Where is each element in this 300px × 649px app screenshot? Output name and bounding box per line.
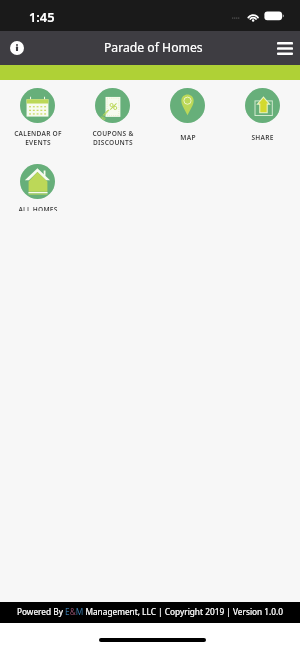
button[interactable]: Info bbox=[0, 31, 34, 65]
button[interactable]: COUPONS & DISCOUNTS bbox=[75, 80, 150, 156]
staticText: COUPONS & DISCOUNTS bbox=[92, 129, 134, 146]
staticText: MAP bbox=[180, 133, 196, 142]
button[interactable]: ALL HOMES bbox=[0, 156, 75, 232]
button[interactable]: SHARE bbox=[225, 80, 300, 156]
staticText: Powered By E&M Management, LLC | Copyrig… bbox=[17, 606, 284, 617]
button[interactable]: MAP bbox=[150, 80, 225, 156]
button[interactable]: Menu bbox=[266, 31, 293, 65]
staticText: CALENDAR OF EVENTS bbox=[14, 129, 62, 146]
staticText: Parade of Homes bbox=[104, 39, 203, 56]
button[interactable]: CALENDAR OF EVENTS bbox=[0, 80, 75, 156]
staticText: 1:45 bbox=[29, 8, 55, 25]
staticText: SHARE bbox=[251, 133, 274, 142]
staticText: ALL HOMES bbox=[18, 205, 58, 211]
